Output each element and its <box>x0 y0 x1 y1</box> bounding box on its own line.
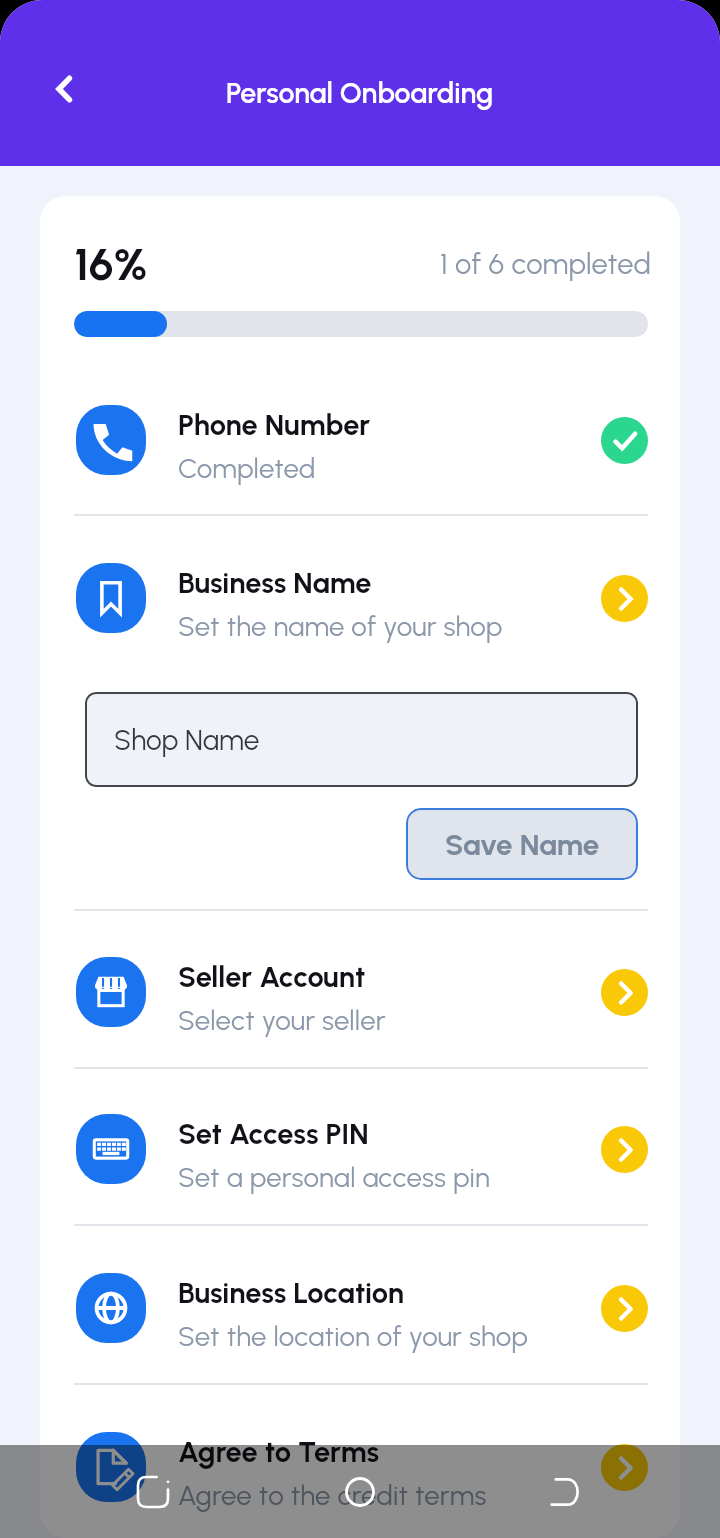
button[interactable]: Seller Account <box>40 946 680 1038</box>
staticText: Personal Onboarding <box>226 76 494 110</box>
button[interactable]: Recents <box>125 1464 181 1520</box>
button[interactable]: Business Location <box>40 1262 680 1354</box>
button[interactable]: Set Access PIN <box>40 1103 680 1195</box>
staticText: Set the name of your shop <box>178 610 503 643</box>
staticText: Completed <box>178 452 316 485</box>
button[interactable]: Open Business Location <box>601 1285 648 1332</box>
staticText: Agree to Terms <box>178 1434 380 1469</box>
button[interactable]: Home <box>332 1464 388 1520</box>
button[interactable]: Back <box>538 1464 594 1520</box>
staticText: Seller Account <box>178 959 366 994</box>
button[interactable]: Completed <box>601 417 648 464</box>
staticText: Set the location of your shop <box>178 1320 529 1353</box>
staticText: Business Name <box>178 565 372 600</box>
button[interactable]: Open Agree to Terms <box>601 1444 648 1491</box>
staticText: Select your seller <box>178 1004 386 1037</box>
staticText: Set Access PIN <box>178 1116 369 1151</box>
staticText: Shop Name <box>114 723 260 757</box>
button[interactable]: Save Name <box>406 808 638 880</box>
button[interactable]: Back <box>30 55 98 123</box>
staticText: Set a personal access pin <box>178 1161 490 1194</box>
staticText: Save Name <box>445 827 600 862</box>
button[interactable]: Phone Number <box>40 394 680 486</box>
staticText: Business Location <box>178 1275 404 1310</box>
button[interactable]: Shop Name <box>85 692 638 787</box>
button[interactable]: Open Business Name <box>601 575 648 622</box>
button[interactable]: Open Seller Account <box>601 969 648 1016</box>
button[interactable]: Open Set Access PIN <box>601 1126 648 1173</box>
staticText: 16% <box>74 237 148 291</box>
staticText: Agree to the credit terms <box>178 1479 487 1512</box>
staticText: 1 of 6 completed <box>440 246 652 281</box>
button[interactable]: Agree to Terms <box>40 1421 680 1513</box>
button[interactable]: Business Name <box>40 552 680 644</box>
staticText: Phone Number <box>178 407 371 442</box>
